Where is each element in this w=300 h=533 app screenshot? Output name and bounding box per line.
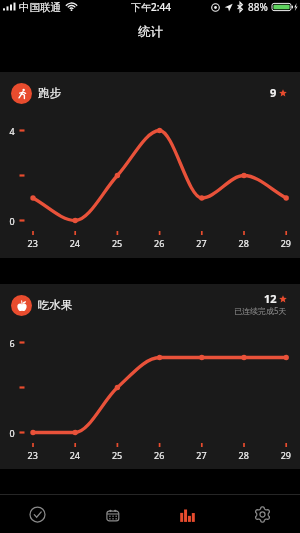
button[interactable]: Tasks bbox=[0, 495, 75, 533]
staticText: 已连续完成5天 bbox=[234, 305, 287, 316]
button[interactable]: Statistics bbox=[150, 495, 225, 533]
button[interactable]: Settings bbox=[225, 495, 300, 533]
staticText: 下午2:44 bbox=[131, 0, 171, 14]
button[interactable]: 吃水果 bbox=[11, 284, 287, 326]
button[interactable]: Calendar bbox=[75, 495, 150, 533]
staticText: 统计 bbox=[138, 24, 163, 40]
staticText: 88% bbox=[248, 0, 268, 14]
button[interactable]: 跑步 bbox=[11, 72, 287, 114]
staticText: 中国联通 bbox=[19, 1, 61, 14]
staticText: 跑步 bbox=[38, 86, 61, 100]
staticText: 12 bbox=[264, 291, 277, 306]
staticText: 9 bbox=[270, 85, 277, 100]
staticText: 吃水果 bbox=[38, 298, 73, 312]
